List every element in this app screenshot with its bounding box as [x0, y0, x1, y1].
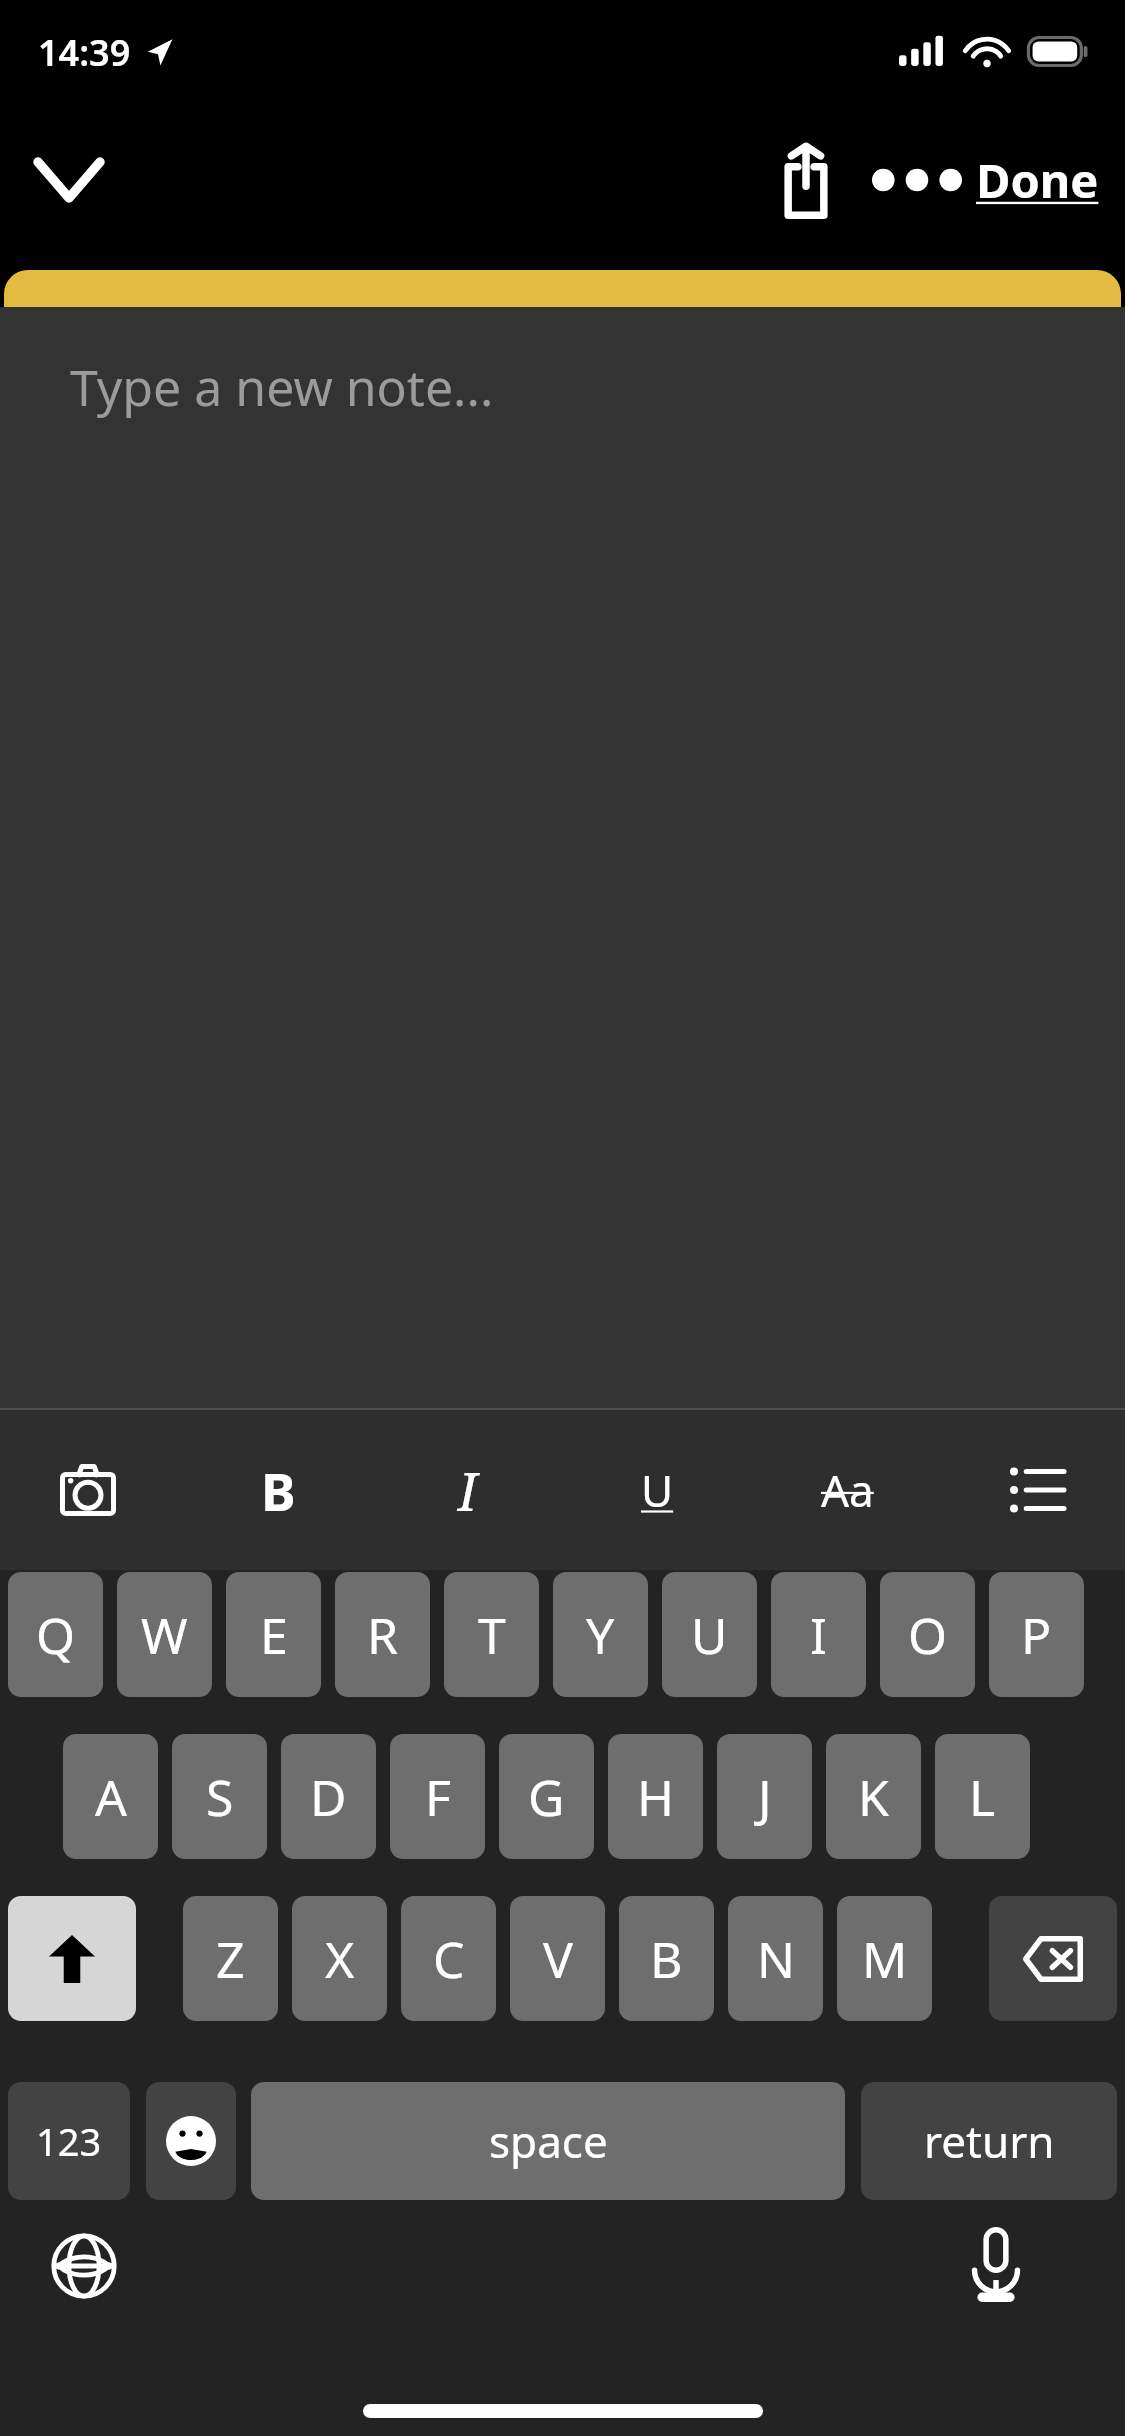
staticText: X [325, 1925, 355, 1993]
staticText: A [95, 1763, 127, 1831]
button[interactable]: Done [976, 125, 1099, 235]
button[interactable]: Bold [218, 1425, 338, 1555]
staticText: K [858, 1763, 889, 1831]
button[interactable]: P [989, 1572, 1084, 1697]
button[interactable]: W [117, 1572, 212, 1697]
button[interactable]: Switch keyboard [38, 2220, 130, 2312]
button[interactable]: More options [858, 125, 976, 235]
staticText: P [1021, 1601, 1052, 1669]
staticText: G [528, 1763, 565, 1831]
button[interactable]: O [880, 1572, 975, 1697]
button[interactable]: R [335, 1572, 430, 1697]
button[interactable]: Share [754, 125, 858, 235]
button[interactable]: Text style [787, 1425, 907, 1555]
button[interactable]: Bulleted list [977, 1425, 1097, 1555]
staticText: Type a new note... [70, 353, 494, 421]
button[interactable]: J [717, 1734, 812, 1859]
button[interactable]: X [292, 1896, 387, 2021]
staticText: H [637, 1763, 675, 1831]
button[interactable]: Dictation [950, 2220, 1042, 2312]
button[interactable]: N [728, 1896, 823, 2021]
button[interactable]: space [251, 2082, 845, 2200]
button[interactable]: 123 [8, 2082, 130, 2200]
button[interactable]: E [226, 1572, 321, 1697]
staticText: Z [216, 1925, 245, 1993]
staticText: Q [36, 1601, 76, 1669]
button[interactable]: H [608, 1734, 703, 1859]
staticText: J [758, 1763, 772, 1831]
staticText: B [650, 1925, 683, 1993]
button[interactable]: I [771, 1572, 866, 1697]
button[interactable]: Backspace [989, 1896, 1117, 2021]
button[interactable]: A [63, 1734, 158, 1859]
staticText: E [260, 1601, 288, 1669]
staticText: F [425, 1763, 451, 1831]
staticText: 14:39 [38, 28, 131, 77]
staticText: 123 [36, 2115, 102, 2167]
staticText: I [458, 1455, 478, 1526]
button[interactable]: Italic [408, 1425, 528, 1555]
staticText: W [141, 1601, 188, 1669]
button[interactable]: U [662, 1572, 757, 1697]
staticText: V [543, 1925, 573, 1993]
staticText: T [478, 1601, 506, 1669]
button[interactable]: Z [183, 1896, 278, 2021]
button[interactable]: L [935, 1734, 1030, 1859]
button[interactable]: Type a new note... [0, 307, 1125, 1408]
staticText: U [641, 1460, 674, 1520]
staticText: Aa [821, 1460, 874, 1520]
button[interactable]: Q [8, 1572, 103, 1697]
button[interactable]: Underline [597, 1425, 717, 1555]
button[interactable]: Emoji [146, 2082, 236, 2200]
staticText: return [924, 2111, 1055, 2171]
button[interactable]: D [281, 1734, 376, 1859]
button[interactable]: B [619, 1896, 714, 2021]
staticText: C [433, 1925, 465, 1993]
button[interactable]: Collapse [14, 125, 124, 235]
staticText: L [969, 1763, 996, 1831]
button[interactable]: F [390, 1734, 485, 1859]
button[interactable]: K [826, 1734, 921, 1859]
staticText: N [757, 1925, 795, 1993]
button[interactable]: M [837, 1896, 932, 2021]
staticText: R [367, 1601, 399, 1669]
button[interactable]: Shift [8, 1896, 136, 2021]
staticText: I [810, 1601, 827, 1669]
button[interactable]: V [510, 1896, 605, 2021]
button[interactable]: C [401, 1896, 496, 2021]
staticText: S [206, 1763, 234, 1831]
button[interactable]: return [861, 2082, 1117, 2200]
button[interactable]: S [172, 1734, 267, 1859]
staticText: D [310, 1763, 347, 1831]
button[interactable]: G [499, 1734, 594, 1859]
staticText: Done [976, 148, 1099, 212]
staticText: U [691, 1601, 728, 1669]
staticText: space [489, 2111, 608, 2171]
staticText: M [862, 1925, 908, 1993]
button[interactable]: Insert photo [28, 1425, 148, 1555]
staticText: O [908, 1601, 948, 1669]
button[interactable]: Y [553, 1572, 648, 1697]
button[interactable]: T [444, 1572, 539, 1697]
staticText: Y [586, 1601, 615, 1669]
staticText: B [261, 1455, 296, 1526]
